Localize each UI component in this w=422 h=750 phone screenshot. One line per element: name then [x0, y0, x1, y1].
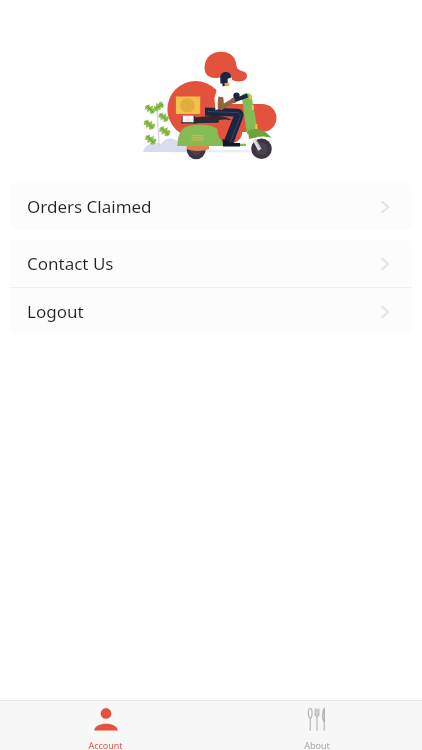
button[interactable]: Contact Us [10, 240, 412, 287]
button[interactable]: Orders Claimed [10, 183, 412, 230]
staticText: Orders Claimed [27, 195, 152, 218]
staticText: About [304, 739, 330, 750]
other: Account [94, 708, 118, 731]
button[interactable]: Logout [10, 288, 412, 335]
button[interactable]: Account [0, 701, 211, 750]
staticText: Logout [27, 300, 84, 323]
staticText: Account [88, 739, 123, 750]
button[interactable]: About [211, 701, 422, 750]
other: About [305, 708, 329, 731]
staticText: Contact Us [27, 252, 114, 275]
